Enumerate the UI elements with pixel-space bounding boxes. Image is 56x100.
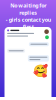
staticText: 🥰 [32, 64, 47, 77]
staticText: No waiting for replies - girls contact y… [5, 2, 50, 30]
